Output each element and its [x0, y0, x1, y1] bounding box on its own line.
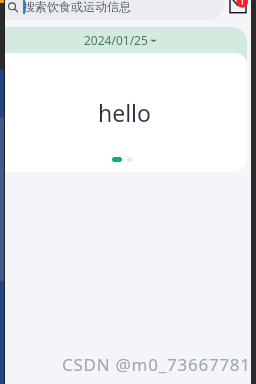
staticText: hello — [98, 97, 151, 128]
staticText: 搜索饮食或运动信息 — [23, 0, 131, 14]
button[interactable]: 2024/01/25 — [5, 27, 247, 68]
button[interactable]: Messages — [224, 0, 250, 20]
button[interactable]: 搜索饮食或运动信息 — [5, 0, 225, 20]
staticText: 2024/01/25 — [84, 32, 148, 48]
staticText: CSDN @m0_73667781 — [62, 353, 251, 376]
